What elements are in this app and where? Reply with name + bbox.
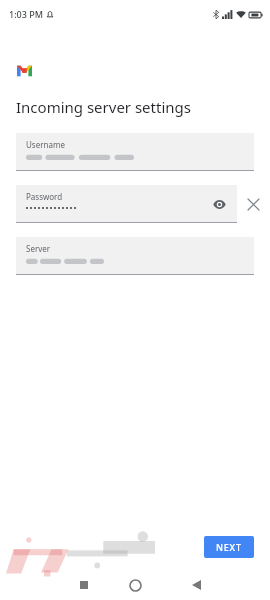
button[interactable]: Username — [16, 133, 254, 171]
staticText: 1:03 PM — [9, 8, 43, 20]
staticText: Username — [26, 139, 65, 150]
button[interactable]: Show password — [209, 194, 229, 214]
button[interactable]: Back — [184, 573, 208, 597]
button[interactable]: Password — [16, 185, 237, 223]
button[interactable]: Server — [16, 237, 254, 275]
button[interactable]: Clear password — [240, 191, 266, 217]
button[interactable]: NEXT — [204, 536, 254, 558]
staticText: Password — [26, 191, 63, 202]
staticText: Server — [26, 243, 51, 254]
staticText: Incoming server settings — [16, 97, 191, 117]
staticText: NEXT — [216, 541, 242, 553]
button[interactable]: Home — [122, 572, 148, 598]
button[interactable]: Recent apps — [72, 573, 96, 597]
